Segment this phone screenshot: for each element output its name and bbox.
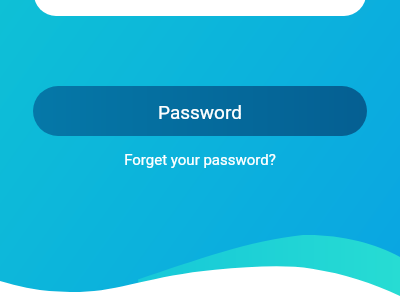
staticText: Password — [158, 101, 242, 123]
button[interactable]: Password — [33, 86, 367, 136]
staticText: Forget your password? — [124, 151, 276, 169]
button[interactable]: Forget your password? — [118, 150, 282, 170]
